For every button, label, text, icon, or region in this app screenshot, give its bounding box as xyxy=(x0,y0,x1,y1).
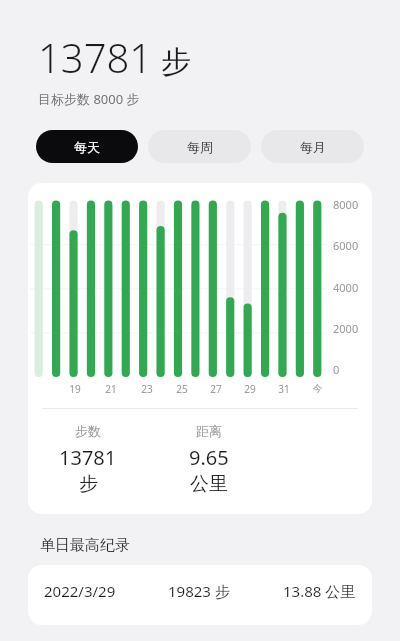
staticText: 步 xyxy=(161,43,191,81)
staticText: 4000 xyxy=(333,280,359,295)
staticText: 19823 步 xyxy=(168,581,230,601)
button[interactable]: 每周 xyxy=(148,130,251,163)
staticText: 0 xyxy=(333,362,340,377)
staticText: 9.65 xyxy=(189,444,229,471)
button[interactable]: 每天 xyxy=(36,130,138,163)
staticText: 每天 xyxy=(74,139,100,155)
staticText: 29 xyxy=(244,382,256,396)
staticText: 19 xyxy=(69,382,81,396)
staticText: 2000 xyxy=(333,321,359,336)
staticText: 单日最高纪录 xyxy=(40,536,130,555)
staticText: 13781 xyxy=(59,444,117,471)
staticText: 每月 xyxy=(300,139,326,155)
staticText: 每周 xyxy=(187,139,213,155)
button[interactable]: 2022/3/29 xyxy=(28,565,372,625)
staticText: 13781 xyxy=(38,30,153,84)
staticText: 6000 xyxy=(333,238,359,253)
staticText: 8000 xyxy=(333,197,359,212)
staticText: 21 xyxy=(105,382,117,396)
staticText: 25 xyxy=(176,382,188,396)
staticText: 目标步数 8000 步 xyxy=(38,90,140,108)
staticText: 公里 xyxy=(190,472,228,496)
staticText: 31 xyxy=(278,382,290,396)
button[interactable]: 每月 xyxy=(261,130,364,163)
staticText: 13.88 公里 xyxy=(283,581,356,601)
staticText: 距离 xyxy=(196,423,222,439)
staticText: 今日 xyxy=(309,382,326,396)
staticText: 步数 xyxy=(75,423,101,439)
staticText: 步 xyxy=(79,472,98,496)
staticText: 2022/3/29 xyxy=(44,581,116,601)
staticText: 23 xyxy=(141,382,153,396)
staticText: 27 xyxy=(210,382,222,396)
